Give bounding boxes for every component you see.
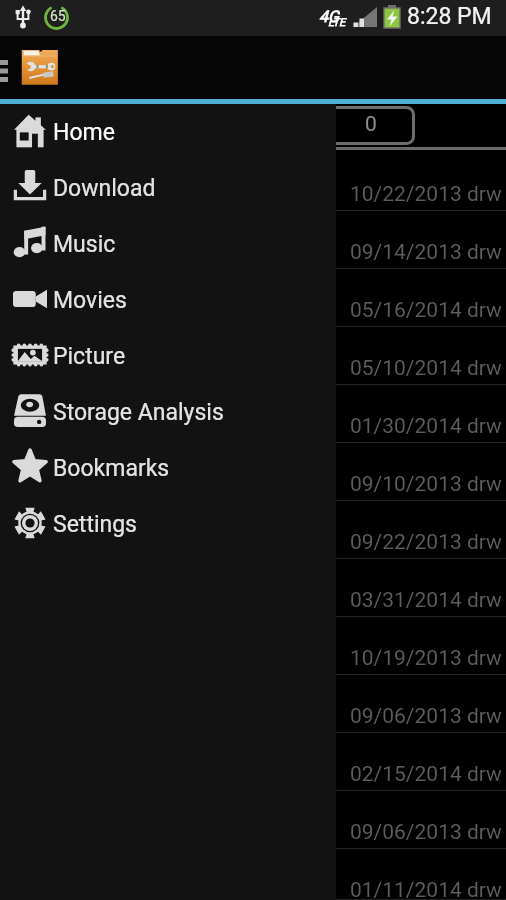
button[interactable]: Storage Analysis [0,384,336,440]
button[interactable]: Movies [0,272,336,328]
staticText: Movies [53,287,127,314]
button[interactable]: 02/15/2014 drw [0,733,506,791]
button[interactable]: Open navigation drawer [0,39,14,102]
staticText: 4G [319,7,339,26]
button[interactable]: 09/14/2013 drw [0,211,506,269]
button[interactable]: Bookmarks [0,440,336,496]
staticText: 05/10/2014 drw [350,356,502,381]
staticText: 65 [50,8,66,24]
staticText: 09/14/2013 drw [350,240,502,265]
button[interactable]: App icon [21,48,59,86]
staticText: 03/31/2014 drw [350,588,502,613]
button[interactable]: Picture [0,328,336,384]
button[interactable]: 09/10/2013 drw [0,443,506,501]
button[interactable]: Music [0,216,336,272]
staticText: 05/16/2014 drw [350,298,502,323]
staticText: 09/22/2013 drw [350,530,502,555]
button[interactable]: 01/11/2014 drw [0,849,506,900]
staticText: Picture [53,343,126,370]
button[interactable]: 05/16/2014 drw [0,269,506,327]
staticText: Bookmarks [53,455,170,482]
staticText: 09/06/2013 drw [350,820,502,845]
button[interactable]: 03/31/2014 drw [0,559,506,617]
button[interactable]: 05/10/2014 drw [0,327,506,385]
button[interactable]: 0 [327,106,415,145]
staticText: 09/06/2013 drw [350,704,502,729]
staticText: 10/19/2013 drw [350,646,502,671]
staticText: Storage Analysis [53,399,224,426]
staticText: 02/15/2014 drw [350,762,502,787]
button[interactable]: Home [0,104,336,160]
button[interactable]: 10/22/2013 drw [0,153,506,211]
staticText: LTE [328,16,346,29]
button[interactable]: 09/06/2013 drw [0,791,506,849]
staticText: 8:28 PM [407,3,492,30]
staticText: 01/30/2014 drw [350,414,502,439]
staticText: Home [53,119,115,146]
button[interactable]: 01/30/2014 drw [0,385,506,443]
button[interactable]: 09/22/2013 drw [0,501,506,559]
staticText: 0 [365,112,377,137]
button[interactable]: 09/06/2013 drw [0,675,506,733]
button[interactable]: Download [0,160,336,216]
staticText: Settings [53,511,137,538]
staticText: 10/22/2013 drw [350,182,502,207]
button[interactable]: 10/19/2013 drw [0,617,506,675]
staticText: Download [53,175,156,202]
button[interactable]: Settings [0,496,336,552]
staticText: 09/10/2013 drw [350,472,502,497]
staticText: Music [53,231,116,258]
staticText: 01/11/2014 drw [350,878,502,900]
